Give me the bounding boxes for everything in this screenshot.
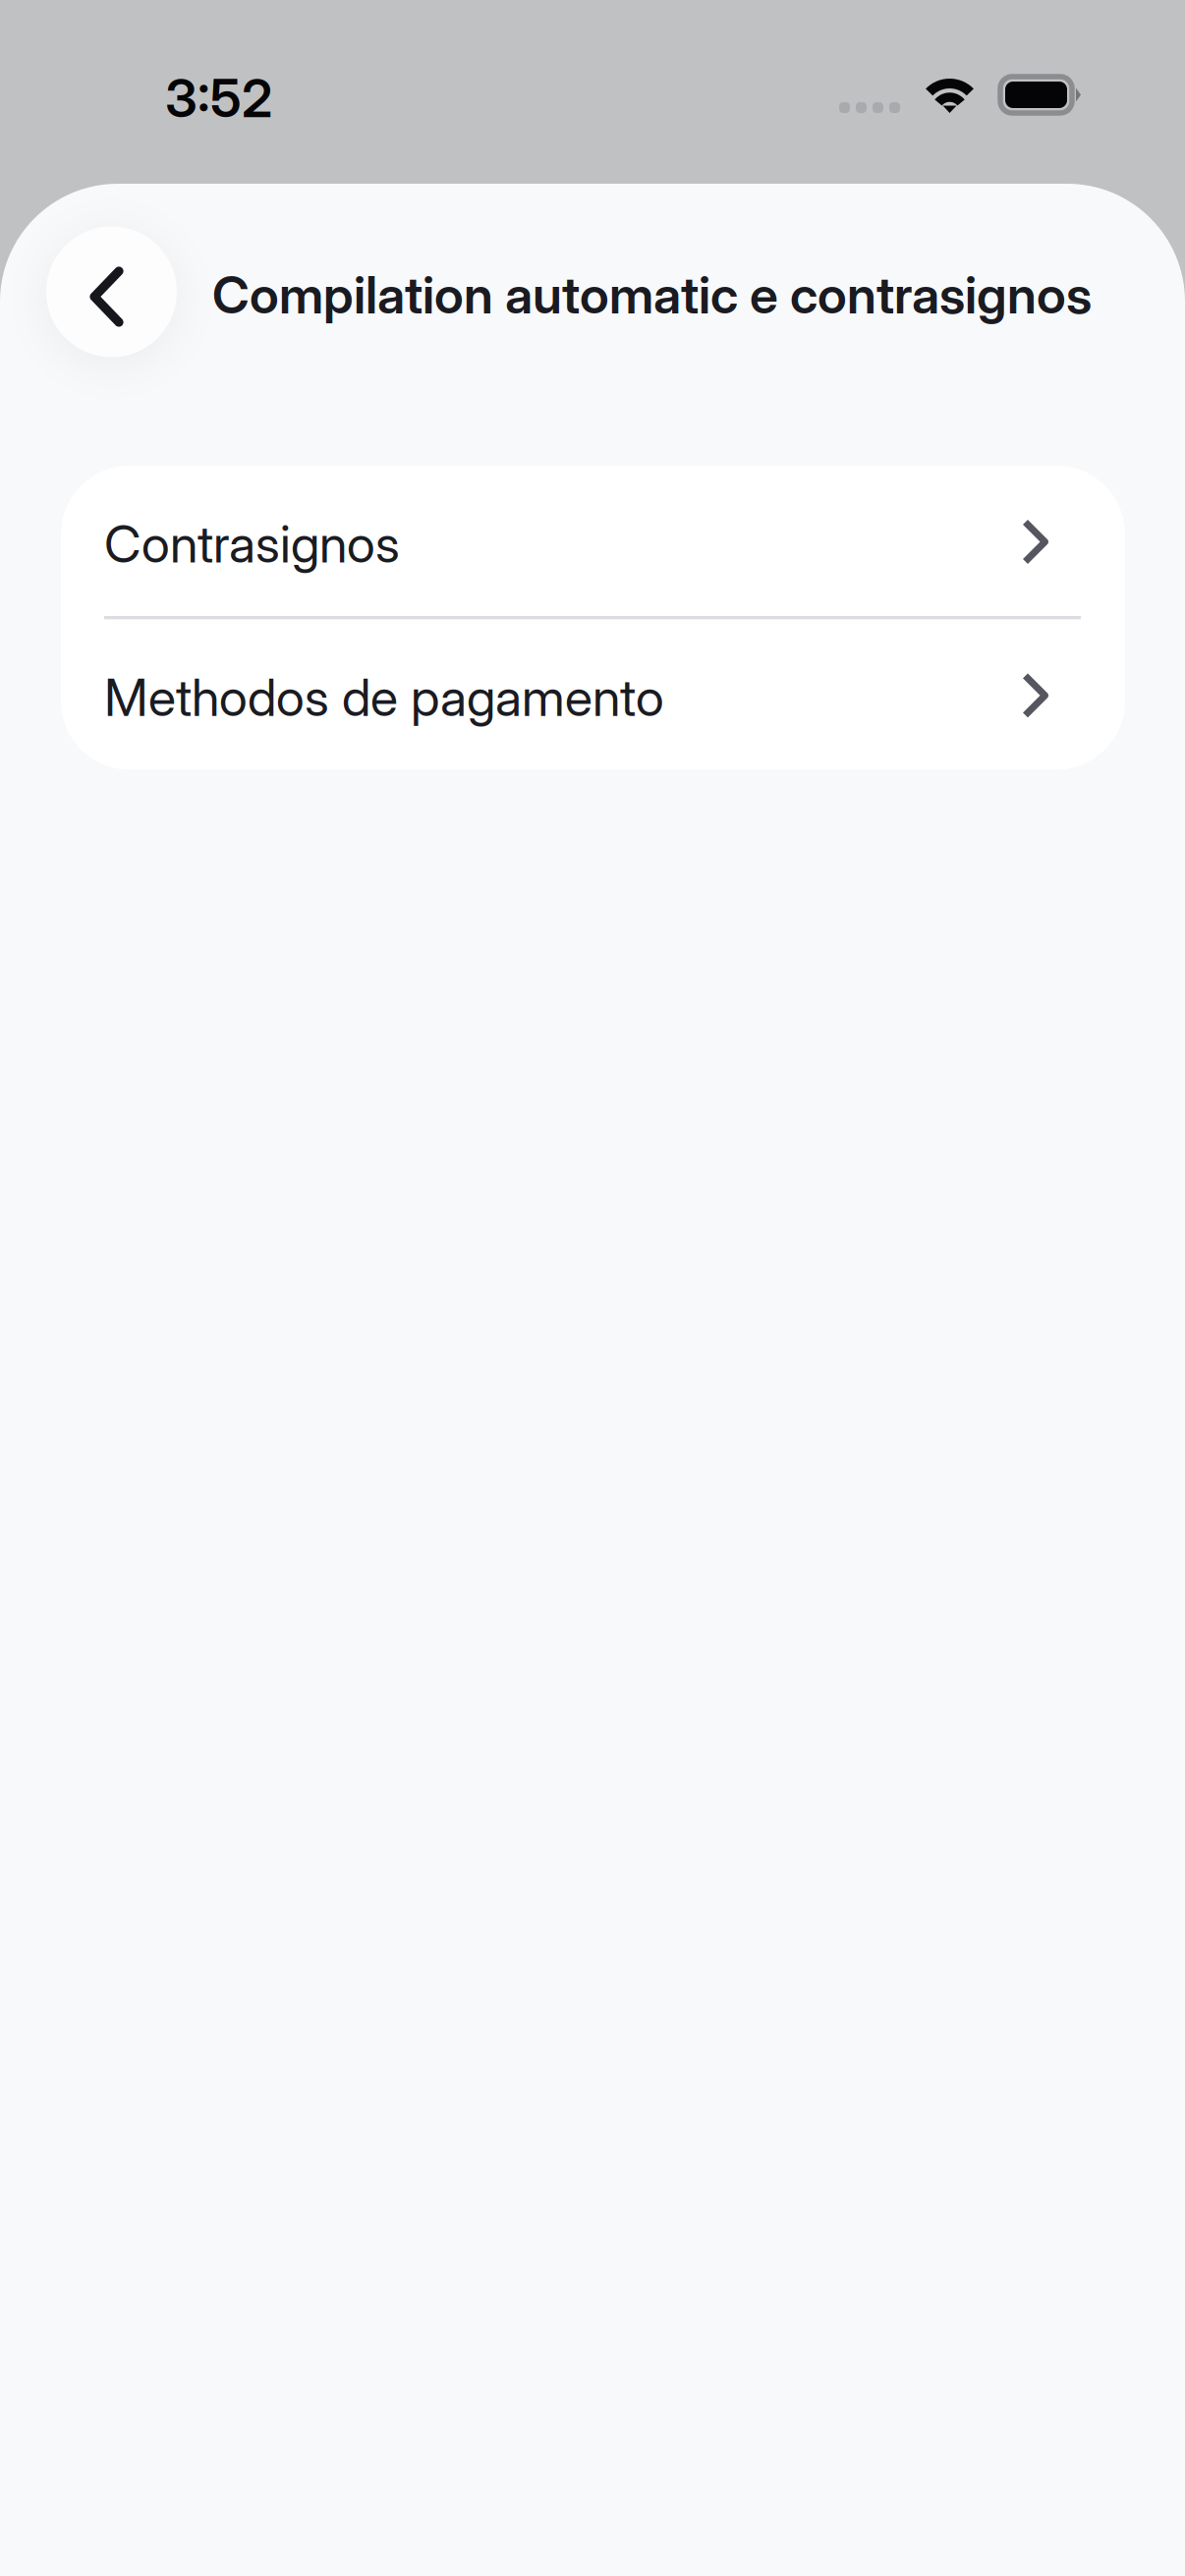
staticText: 3:52 (165, 66, 272, 130)
staticText: Compilation automatic e contrasignos (212, 264, 1092, 326)
button[interactable]: Methodos de pagamento (61, 619, 1125, 770)
button[interactable]: Contrasignos (61, 466, 1125, 616)
button[interactable]: Back (46, 226, 177, 357)
staticText: Methodos de pagamento (104, 666, 664, 728)
staticText: Contrasignos (104, 513, 400, 575)
